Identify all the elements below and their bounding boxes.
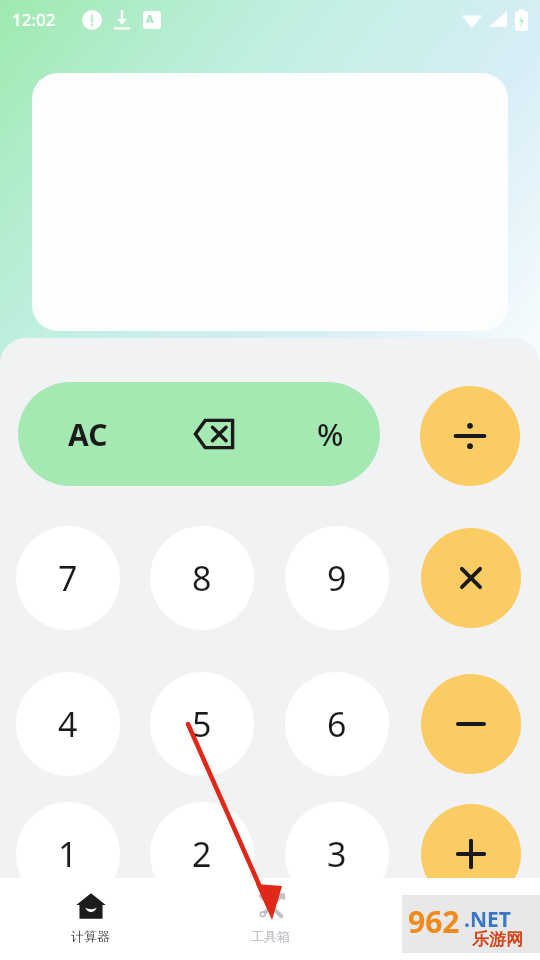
staticText: 乐游网 [472, 929, 523, 950]
button[interactable]: 5 [150, 672, 254, 776]
staticText: A [146, 11, 154, 26]
staticText: 8 [192, 555, 212, 601]
staticText: 7 [58, 555, 78, 601]
button[interactable] [421, 674, 521, 774]
button[interactable]: Toolbox [180, 878, 360, 960]
staticText: 2 [192, 831, 212, 877]
button[interactable]: AC [18, 382, 380, 486]
staticText: AC [68, 414, 108, 455]
button[interactable]: 8 [150, 526, 254, 630]
button[interactable]: 3 [285, 802, 389, 878]
staticText: 1 [58, 831, 78, 877]
button[interactable]: Backspace [166, 382, 262, 486]
button[interactable]: 7 [16, 526, 120, 630]
button[interactable] [421, 528, 521, 628]
staticText: .NET [464, 905, 511, 934]
other: Calculator [75, 890, 107, 922]
staticText: 4 [58, 701, 78, 747]
button[interactable]: AC [38, 382, 138, 486]
staticText: 9 [327, 555, 347, 601]
button[interactable]: % [290, 382, 370, 486]
button[interactable] [421, 804, 521, 878]
staticText: 12:02 [12, 8, 56, 31]
button[interactable]: Calculator [0, 878, 180, 960]
button[interactable] [420, 386, 520, 486]
button[interactable]: 4 [16, 672, 120, 776]
button[interactable]: 6 [285, 672, 389, 776]
staticText: 工具箱 [251, 928, 290, 944]
button[interactable]: 1 [16, 802, 120, 878]
staticText: 6 [327, 701, 347, 747]
staticText: 5 [192, 701, 212, 747]
button[interactable]: 9 [285, 526, 389, 630]
staticText: 计算器 [71, 928, 110, 944]
staticText: % [317, 413, 344, 455]
other: Toolbox [255, 890, 287, 922]
button[interactable]: 2 [150, 802, 254, 878]
staticText: 3 [327, 831, 347, 877]
staticText: 962 [408, 901, 460, 942]
